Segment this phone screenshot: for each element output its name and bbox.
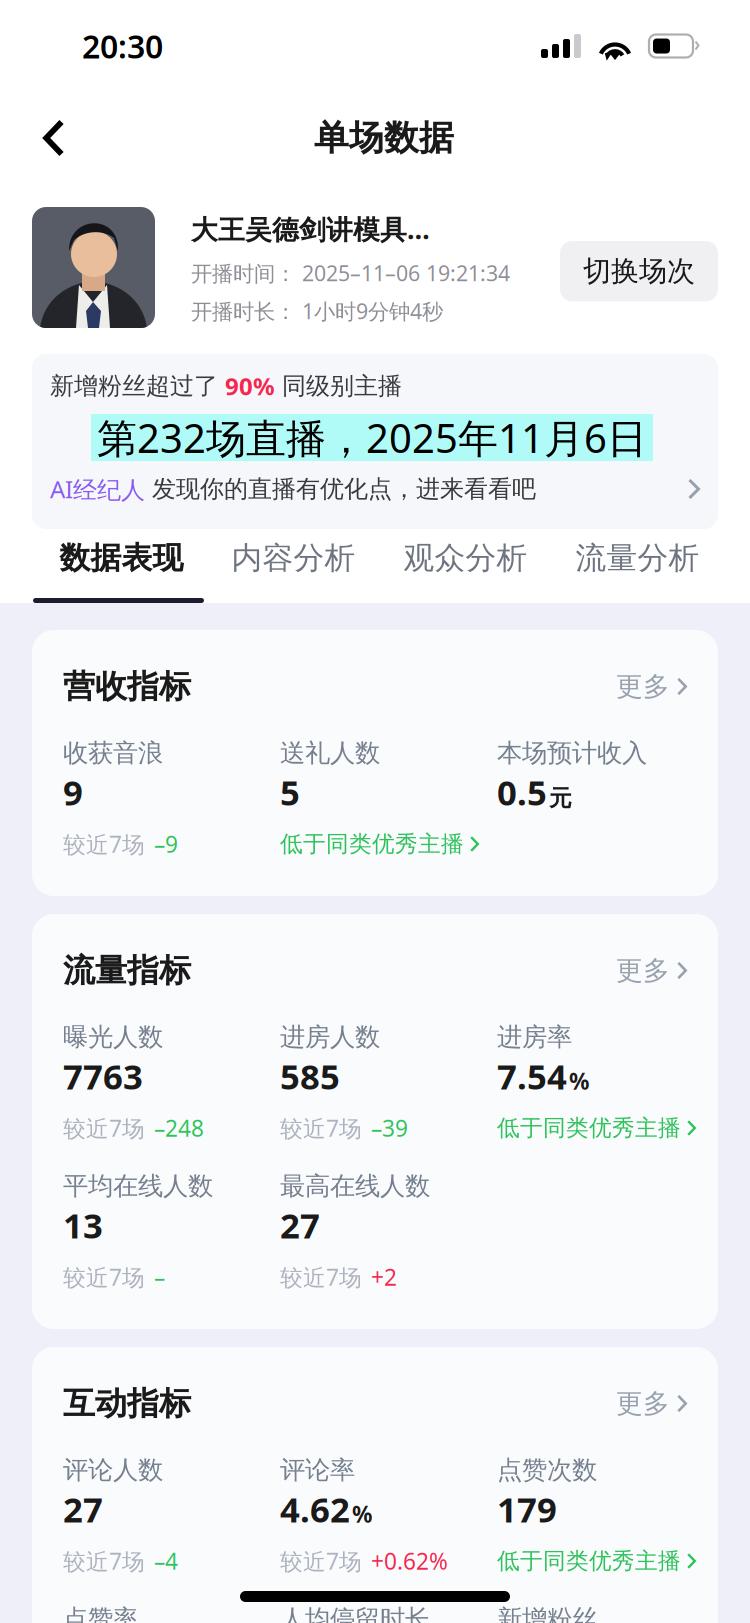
staticText: 新增粉丝 — [497, 1603, 597, 1623]
button[interactable]: 更多 — [616, 1387, 687, 1420]
staticText: 较近7场 — [63, 829, 145, 859]
staticText: 评论率 — [280, 1454, 355, 1485]
staticText: 较近7场 — [63, 1262, 145, 1292]
staticText: 较近7场 — [280, 1113, 362, 1143]
staticText: 5 — [280, 769, 300, 815]
button[interactable]: 数据表现 — [35, 529, 207, 587]
staticText: 互动指标 — [63, 1384, 191, 1423]
staticText: 单场数据 — [314, 117, 454, 159]
staticText: 点赞率 — [63, 1603, 138, 1623]
staticText: 179 — [497, 1486, 557, 1532]
staticText: % — [569, 1066, 589, 1096]
staticText: 收获音浪 — [63, 737, 163, 768]
staticText: –9 — [154, 829, 178, 859]
staticText: 内容分析 — [231, 539, 355, 577]
staticText: –248 — [154, 1113, 204, 1143]
button[interactable]: 流量分析 — [551, 529, 723, 587]
staticText: AI经纪人 — [50, 473, 145, 505]
staticText: 27 — [63, 1486, 103, 1532]
staticText: 7.54 — [497, 1053, 567, 1099]
staticText: 7763 — [63, 1053, 143, 1099]
staticText: 进房率 — [497, 1021, 572, 1052]
staticText: 20:30 — [82, 25, 163, 67]
staticText: 同级别主播 — [275, 371, 402, 401]
button[interactable]: 切换场次 — [560, 241, 718, 301]
staticText: 较近7场 — [280, 1546, 362, 1576]
staticText: 0.5 — [497, 769, 547, 815]
staticText: 低于同类优秀主播 — [497, 1547, 681, 1575]
staticText: 发现你的直播有优化点，进来看看吧 — [145, 474, 536, 504]
staticText: 585 — [280, 1053, 340, 1099]
staticText: 较近7场 — [63, 1113, 145, 1143]
staticText: 低于同类优秀主播 — [497, 1114, 681, 1142]
staticText: 数据表现 — [59, 539, 183, 577]
button[interactable]: Back — [0, 103, 90, 173]
staticText: 较近7场 — [280, 1262, 362, 1292]
button[interactable]: 更多 — [616, 954, 687, 987]
button[interactable]: 内容分析 — [207, 529, 379, 587]
staticText: 更多 — [616, 1387, 670, 1420]
staticText: 切换场次 — [583, 254, 695, 288]
staticText: 点赞次数 — [497, 1454, 597, 1485]
button[interactable]: AI经纪人 — [32, 461, 718, 529]
staticText: 更多 — [616, 670, 670, 703]
staticText: 人均停留时长 — [280, 1603, 430, 1623]
staticText: % — [352, 1499, 372, 1529]
staticText: 27 — [280, 1202, 320, 1248]
staticText: 13 — [63, 1202, 103, 1248]
staticText: 开播时间： 2025–11–06 19:21:34 — [191, 259, 510, 287]
staticText: 较近7场 — [63, 1546, 145, 1576]
staticText: 9 — [63, 769, 83, 815]
button[interactable]: 观众分析 — [379, 529, 551, 587]
staticText: 本场预计收入 — [497, 737, 647, 768]
staticText: – — [154, 1262, 165, 1292]
staticText: 进房人数 — [280, 1021, 380, 1052]
staticText: 平均在线人数 — [63, 1170, 213, 1201]
staticText: 新增粉丝超过了 — [50, 371, 225, 401]
staticText: 评论人数 — [63, 1454, 163, 1485]
staticText: 开播时长： 1小时9分钟4秒 — [191, 297, 443, 325]
staticText: 曝光人数 — [63, 1021, 163, 1052]
staticText: 最高在线人数 — [280, 1170, 430, 1201]
button[interactable]: 低于同类优秀主播 — [497, 1117, 696, 1139]
staticText: 营收指标 — [63, 667, 191, 706]
staticText: +2 — [371, 1262, 397, 1292]
staticText: 90% — [225, 370, 275, 402]
staticText: 第232场直播，2025年11月6日 — [97, 411, 647, 464]
staticText: 流量指标 — [63, 951, 191, 990]
staticText: 4.62 — [280, 1486, 350, 1532]
staticText: 流量分析 — [575, 539, 699, 577]
staticText: –4 — [154, 1546, 178, 1576]
staticText: 低于同类优秀主播 — [280, 830, 464, 858]
button[interactable]: 低于同类优秀主播 — [280, 833, 479, 855]
staticText: 观众分析 — [403, 539, 527, 577]
staticText: 元 — [549, 784, 572, 812]
button[interactable]: 更多 — [616, 670, 687, 703]
staticText: –39 — [371, 1113, 408, 1143]
staticText: +0.62% — [371, 1546, 448, 1576]
staticText: 大王吴德剑讲模具… — [191, 211, 430, 247]
staticText: 送礼人数 — [280, 737, 380, 768]
button[interactable]: 低于同类优秀主播 — [497, 1550, 696, 1572]
staticText: 更多 — [616, 954, 670, 987]
